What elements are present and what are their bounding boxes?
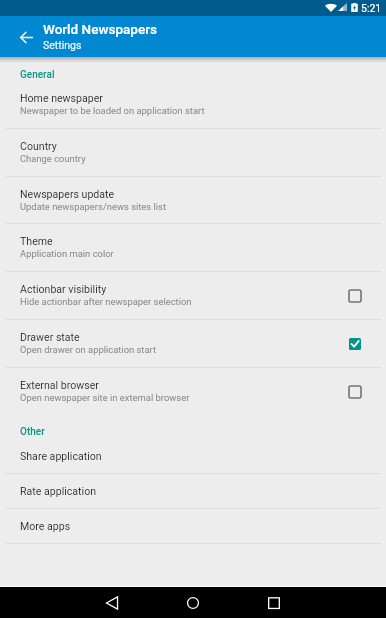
button[interactable]: Country	[0, 129, 386, 176]
staticText: Share application	[20, 450, 102, 462]
button[interactable]: More apps	[0, 509, 386, 543]
button[interactable]: Navigate up	[12, 23, 40, 51]
staticText: Other	[20, 426, 45, 438]
button[interactable]: Home	[173, 587, 213, 618]
button[interactable]: Rate application	[0, 474, 386, 508]
staticText: Hide actionbar after newspaper selection	[20, 296, 192, 307]
staticText: Theme	[20, 235, 53, 247]
button[interactable]: Actionbar visibility	[0, 272, 386, 319]
button[interactable]: Recent apps	[254, 587, 294, 618]
button[interactable]: Drawer state	[0, 320, 386, 367]
staticText: More apps	[20, 520, 71, 532]
staticText: Change country	[20, 153, 86, 164]
staticText: 5:21	[361, 2, 382, 14]
staticText: Open newspaper site in external browser	[20, 392, 190, 403]
staticText: Open drawer on application start	[20, 344, 157, 355]
button[interactable]: Newspapers update	[0, 177, 386, 224]
button[interactable]: Share application	[0, 439, 386, 473]
staticText: External browser	[20, 379, 99, 391]
staticText: Home newspaper	[20, 92, 103, 104]
staticText: Application main color	[20, 248, 114, 259]
staticText: Rate application	[20, 485, 97, 497]
button[interactable]: Home newspaper	[0, 81, 386, 128]
staticText: Newspaper to be loaded on application st…	[20, 105, 205, 116]
staticText: Country	[20, 140, 57, 152]
staticText: General	[20, 69, 55, 81]
staticText: World Newspapers	[43, 21, 157, 37]
staticText: Settings	[43, 39, 82, 51]
button[interactable]: Back	[92, 587, 132, 618]
staticText: Drawer state	[20, 331, 80, 343]
staticText: Actionbar visibility	[20, 283, 107, 295]
button[interactable]: External browser	[0, 368, 386, 415]
button[interactable]: Theme	[0, 224, 386, 271]
staticText: Update newspapers/news sites list	[20, 201, 166, 212]
staticText: Newspapers update	[20, 188, 115, 200]
